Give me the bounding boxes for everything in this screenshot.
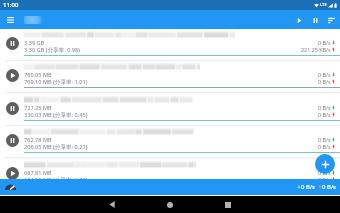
staticText: 0 B/s (318, 39, 331, 46)
button[interactable]: Resume (0, 61, 340, 93)
button[interactable]: Pause (6, 102, 19, 115)
staticText: 687.81 MB (24, 169, 52, 177)
button[interactable]: Pause (0, 29, 340, 61)
button[interactable]: Speed limit (2, 179, 18, 195)
staticText: 0 B/s (318, 136, 331, 143)
staticText: 0 B/s (322, 183, 336, 191)
button[interactable]: Home (162, 197, 177, 212)
button[interactable]: Pause (0, 94, 340, 126)
staticText: 330.03 MB (分享率: 0.45) (24, 111, 88, 119)
staticText: 0 B/s (318, 78, 331, 85)
staticText: 3.39 GB (24, 39, 45, 47)
staticText: 221.25 KB/s (301, 46, 331, 53)
staticText: 11:00 (3, 1, 19, 9)
button[interactable]: Add torrent (315, 154, 335, 174)
staticText: 0 B/s (318, 176, 331, 183)
button[interactable]: Recents (220, 197, 235, 212)
staticText: 762.78 MB (24, 136, 52, 144)
button[interactable]: Pause all (308, 13, 322, 27)
button[interactable]: Back (104, 197, 119, 212)
staticText: 769.10 MB (分享率: 1.01) (24, 78, 88, 86)
button[interactable]: Resume (6, 167, 19, 180)
button[interactable]: Pause (0, 126, 340, 158)
staticText: 0 B/s (318, 104, 331, 111)
staticText: 206.05 MB (分享率: 0.27) (24, 143, 88, 151)
staticText: 0 B/s (318, 111, 331, 118)
staticText: 760.05 MB (24, 71, 52, 79)
button[interactable]: Start all (292, 13, 306, 27)
staticText: 0 B/s (318, 143, 331, 150)
staticText: 0 B/s (301, 183, 315, 191)
staticText: 684.95 MB (分享率: 1.00) (24, 176, 88, 184)
staticText: 3.30 GB (分享率: 0.98) (24, 46, 80, 54)
button[interactable]: Pause (6, 134, 19, 147)
staticText: LTE (320, 2, 327, 8)
staticText: 727.25 MB (24, 104, 52, 112)
button[interactable]: Resume (0, 159, 340, 191)
button[interactable]: Menu (3, 13, 17, 27)
button[interactable]: Pause (6, 37, 19, 50)
button[interactable]: Sort (324, 13, 338, 27)
staticText: 0 B/s (318, 169, 331, 176)
button[interactable]: Resume (6, 69, 19, 82)
staticText: 0 B/s (318, 71, 331, 78)
